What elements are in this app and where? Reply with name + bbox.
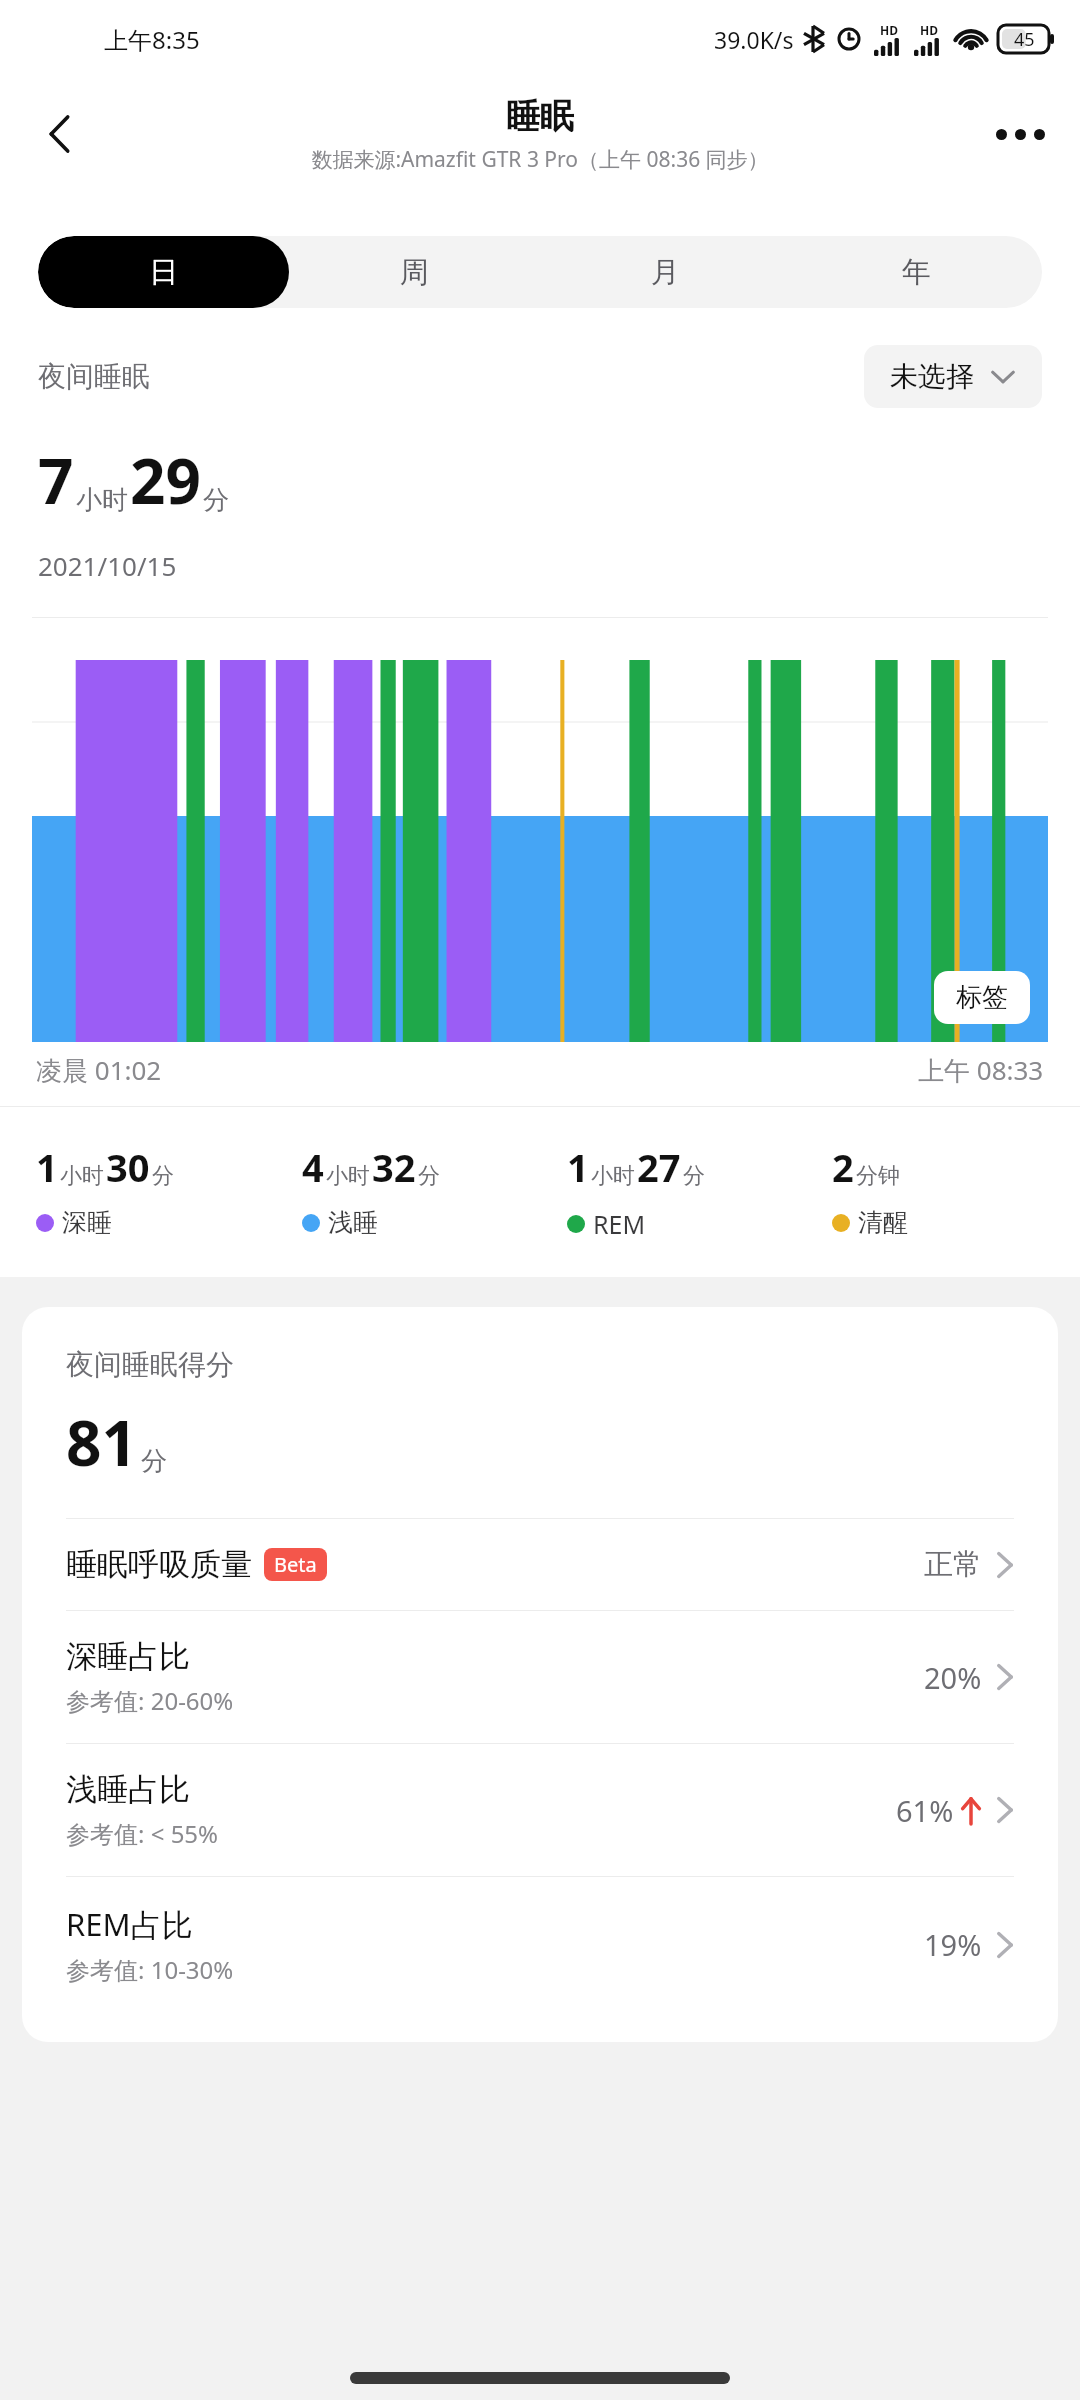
button[interactable]: 未选择 [864,345,1042,408]
staticText: 小时 [60,1162,104,1190]
staticText: 未选择 [890,359,974,394]
staticText: 32 [372,1141,416,1193]
staticText: 2021/10/15 [38,548,177,583]
staticText: 1 [567,1141,589,1193]
staticText: 20% [924,1658,982,1697]
button[interactable]: 标签 [934,971,1030,1024]
staticText: 小时 [591,1162,635,1190]
staticText: 29 [130,438,201,522]
staticText: 上午8:35 [104,23,200,56]
staticText: 39.0K/s [714,24,794,55]
staticText: 月 [651,254,680,291]
staticText: 2 [832,1141,854,1193]
staticText: 81 [66,1400,137,1484]
staticText: 凌晨 01:02 [36,1052,162,1088]
staticText: 参考值: < 55% [66,1817,219,1850]
staticText: 分 [203,484,229,517]
staticText: 上午 08:33 [918,1052,1044,1088]
button[interactable]: More options [986,100,1054,168]
staticText: 年 [902,254,931,291]
button[interactable]: 浅睡占比 [22,1744,1058,1877]
staticText: 27 [637,1141,681,1193]
staticText: 4 [302,1141,324,1193]
staticText: 小时 [76,484,128,517]
staticText: 分 [683,1162,705,1190]
staticText: 分钟 [856,1162,900,1190]
staticText: 深睡 [62,1207,112,1238]
staticText: REM [593,1207,646,1241]
staticText: 分 [141,1445,167,1478]
staticText: 61% [896,1791,954,1830]
button[interactable]: REM占比 [22,1877,1058,2012]
staticText: 深睡占比 [66,1637,190,1676]
staticText: 分 [418,1162,440,1190]
staticText: 日 [149,254,178,291]
staticText: 7 [38,438,74,522]
staticText: 标签 [956,981,1008,1014]
staticText: 清醒 [858,1207,908,1238]
staticText: 45 [1014,27,1035,52]
staticText: Beta [274,1551,317,1578]
staticText: 数据来源:Amazfit GTR 3 Pro（上午 08:36 同步） [311,145,769,174]
button[interactable]: Back [26,100,94,168]
button[interactable]: 深睡占比 [22,1611,1058,1744]
staticText: REM占比 [66,1903,193,1945]
staticText: 1 [36,1141,58,1193]
button[interactable]: 睡眠呼吸质量 [22,1519,1058,1611]
button[interactable]: 年 [791,236,1042,308]
staticText: HD [880,22,898,38]
staticText: 浅睡占比 [66,1770,190,1809]
staticText: 小时 [326,1162,370,1190]
staticText: 30 [106,1141,150,1193]
staticText: 睡眠呼吸质量 [66,1545,252,1584]
button[interactable]: 日 [38,236,289,308]
staticText: 参考值: 20-60% [66,1684,234,1717]
button[interactable]: 周 [289,236,540,308]
staticText: 浅睡 [328,1207,378,1238]
staticText: 睡眠 [506,95,574,138]
staticText: 夜间睡眠得分 [66,1347,234,1382]
staticText: 夜间睡眠 [38,359,864,394]
staticText: 分 [152,1162,174,1190]
staticText: HD [920,22,938,38]
staticText: 19% [924,1925,982,1964]
staticText: 参考值: 10-30% [66,1953,234,1986]
staticText: 正常 [924,1546,982,1583]
button[interactable]: 月 [540,236,791,308]
staticText: 周 [400,254,429,291]
